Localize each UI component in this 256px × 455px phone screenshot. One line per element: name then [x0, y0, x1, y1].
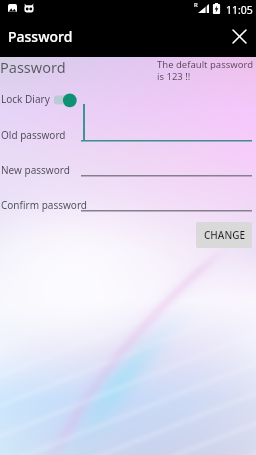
staticText: Password — [8, 27, 73, 46]
staticText: The default password is 123 !! — [157, 58, 254, 83]
button[interactable]: New password — [0, 157, 256, 177]
button[interactable]: Old password — [0, 122, 256, 142]
staticText: Confirm password — [1, 198, 87, 212]
staticText: CHANGE — [204, 228, 245, 242]
button[interactable]: Close — [224, 21, 255, 52]
button[interactable]: Confirm password — [0, 192, 256, 212]
staticText: R — [194, 1, 198, 9]
button[interactable]: CHANGE — [196, 222, 252, 248]
staticText: Lock Diary — [1, 92, 50, 106]
button[interactable]: Lock Diary — [0, 88, 256, 112]
staticText: Old password — [1, 128, 66, 142]
staticText: New password — [1, 163, 70, 177]
staticText: Password — [0, 57, 66, 77]
staticText: 11:05 — [226, 3, 253, 17]
